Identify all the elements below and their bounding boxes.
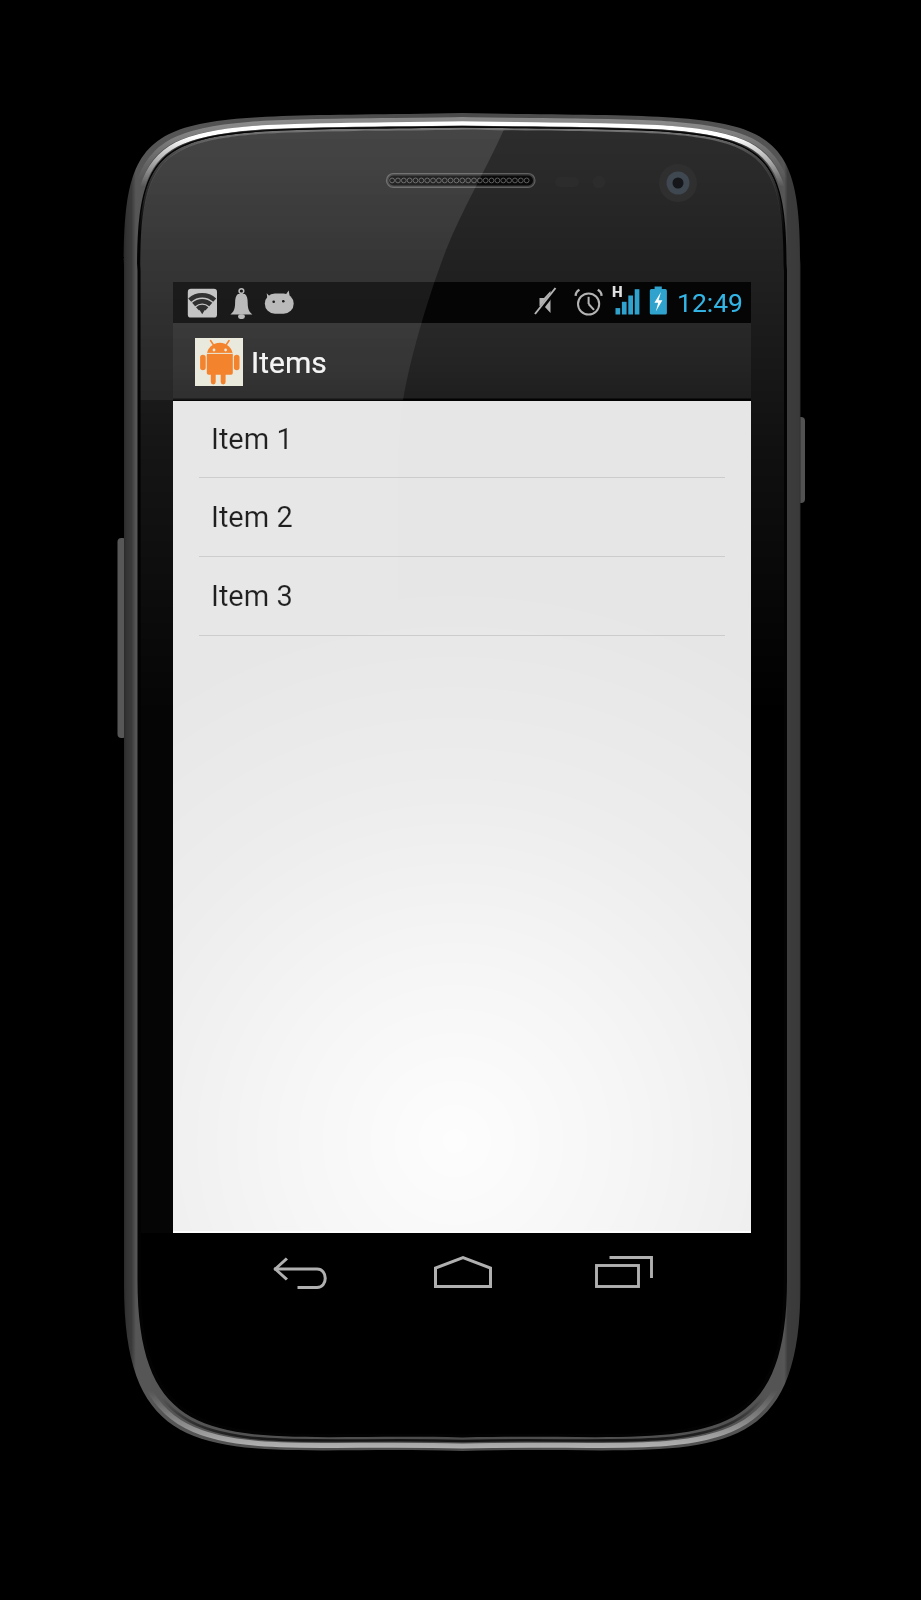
staticText: Items	[251, 345, 327, 380]
staticText: H	[612, 283, 623, 301]
button[interactable]: Item 2	[173, 478, 751, 557]
staticText: Item 1	[211, 422, 293, 456]
staticText: Item 2	[211, 500, 293, 534]
staticText: 12:49	[677, 287, 743, 318]
button[interactable]: Item 1	[173, 401, 751, 478]
button[interactable]: Recent apps	[543, 1233, 704, 1311]
button[interactable]: Home	[382, 1233, 543, 1311]
staticText: Item 3	[211, 579, 293, 613]
button[interactable]: App icon, navigate up	[195, 338, 243, 386]
button[interactable]: Item 3	[173, 557, 751, 636]
button[interactable]: Back	[221, 1233, 382, 1311]
